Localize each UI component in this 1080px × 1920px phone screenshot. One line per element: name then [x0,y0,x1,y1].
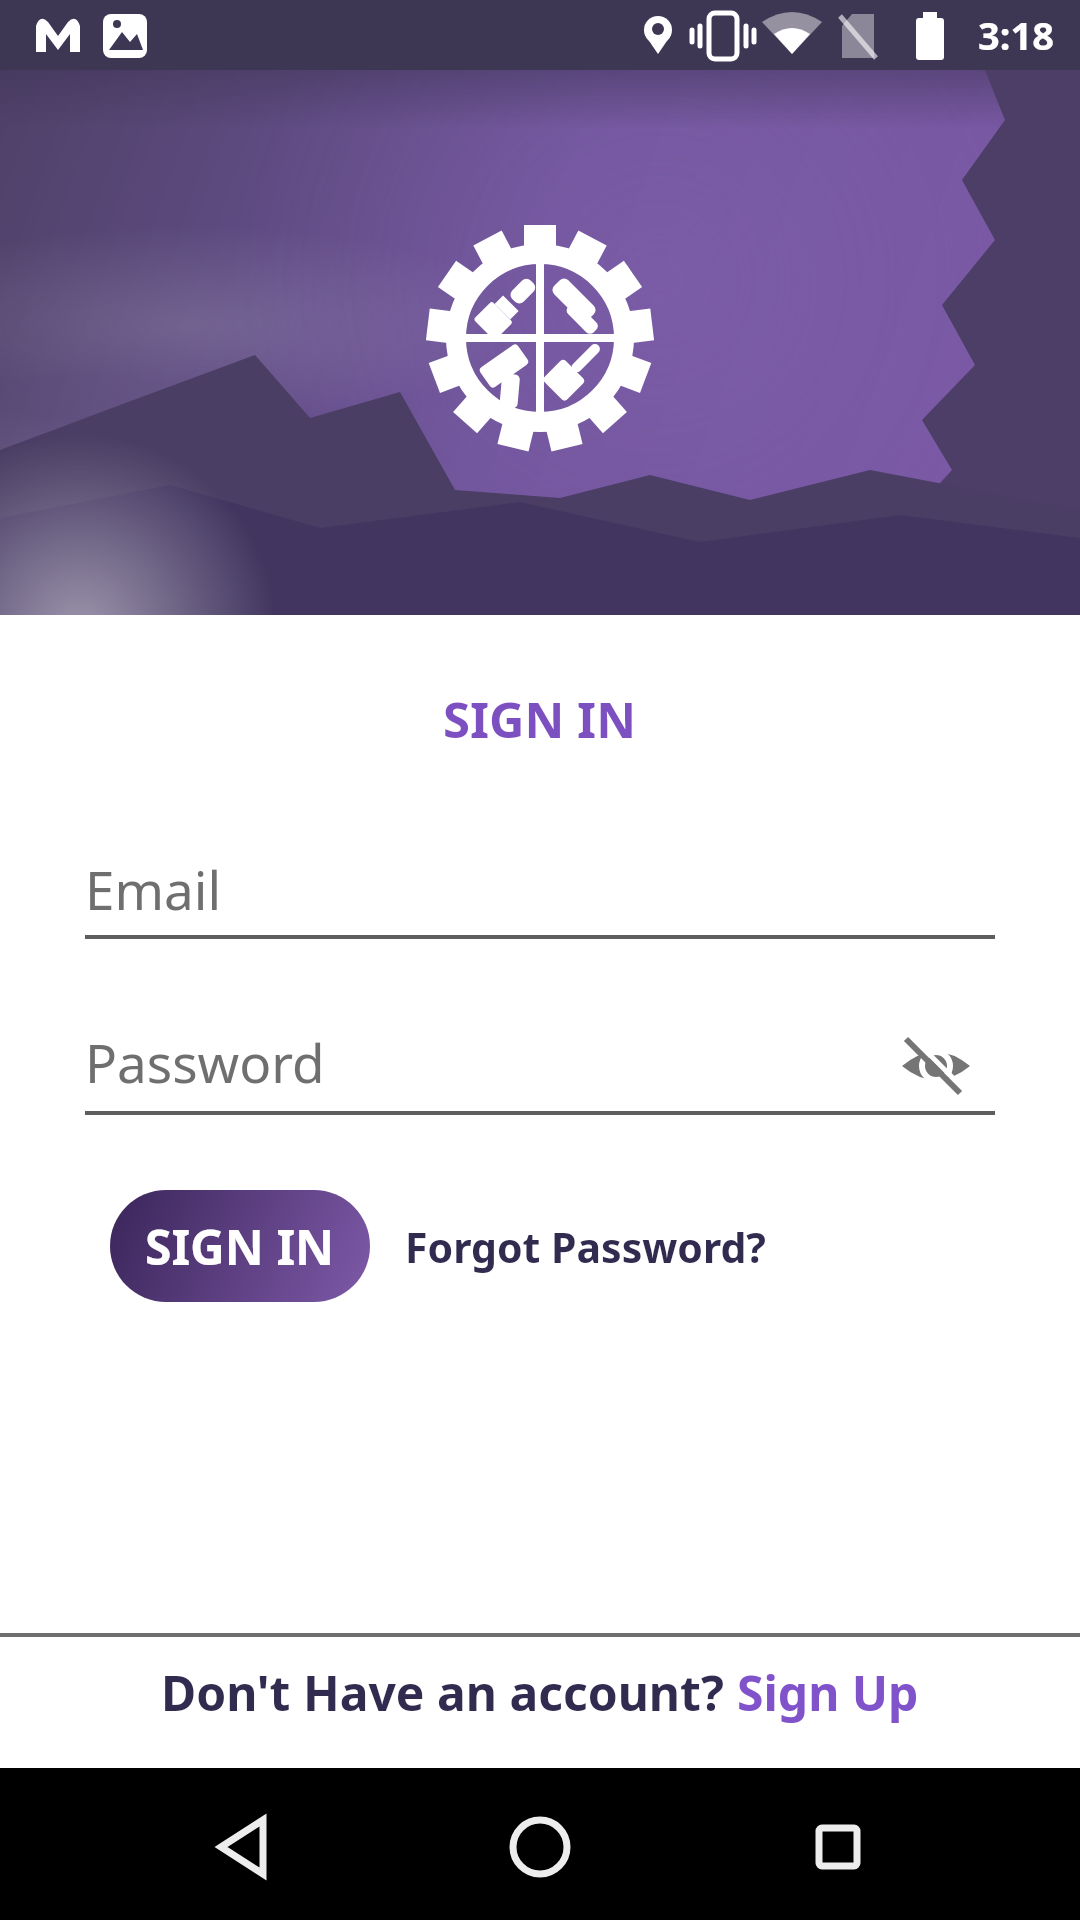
staticText: Forgot Password? [405,1219,766,1275]
button[interactable]: Forgot Password? [405,1219,766,1275]
staticText: Password [85,1026,325,1098]
button[interactable] [360,1768,720,1920]
staticText: SIGN IN [145,1214,335,1279]
button[interactable] [890,1025,980,1105]
staticText: Don't Have an account? [161,1660,737,1725]
button[interactable] [0,1768,360,1920]
button[interactable]: Sign Up [737,1660,919,1725]
staticText: Email [85,853,222,925]
button[interactable] [720,1768,1080,1920]
staticText: Sign Up [737,1660,919,1725]
staticText: 3:18 [978,9,1054,61]
button[interactable]: Email [85,855,995,939]
button[interactable]: SIGN IN [110,1190,370,1302]
staticText: SIGN IN [443,686,637,753]
button[interactable]: Password [85,1030,995,1115]
